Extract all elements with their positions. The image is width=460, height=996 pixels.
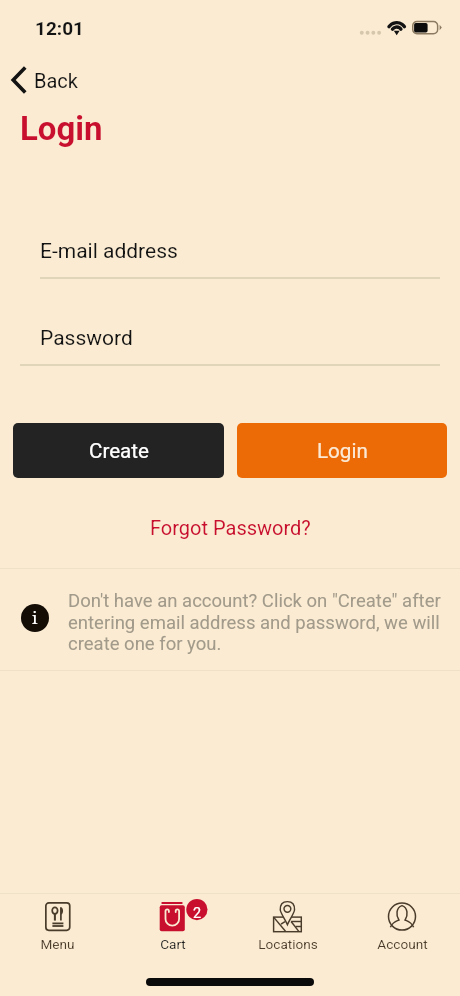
button[interactable]: Back [5, 63, 92, 97]
staticText: Cart [160, 936, 186, 952]
button[interactable]: Create [13, 423, 224, 478]
staticText: i [32, 606, 38, 629]
staticText: Menu [40, 936, 75, 952]
staticText: 12:01 [35, 17, 84, 39]
staticText: Password [40, 326, 133, 351]
staticText: Locations [258, 936, 318, 952]
staticText: Account [377, 936, 428, 952]
button[interactable]: Account [345, 894, 460, 962]
staticText: E-mail address [40, 239, 178, 264]
staticText: 2 [193, 905, 202, 922]
staticText: Don't have an account? Click on "Create"… [68, 590, 449, 654]
staticText: Login [20, 109, 103, 148]
button[interactable]: Login [237, 423, 447, 478]
staticText: Back [34, 69, 78, 92]
button[interactable]: Cart, 2 items [115, 894, 230, 962]
button[interactable]: Locations [230, 894, 345, 962]
staticText: Forgot Password? [150, 516, 311, 539]
button[interactable]: Forgot Password? [136, 509, 325, 546]
button[interactable]: Menu [0, 894, 115, 962]
staticText: Login [317, 439, 368, 463]
staticText: Create [89, 439, 149, 463]
